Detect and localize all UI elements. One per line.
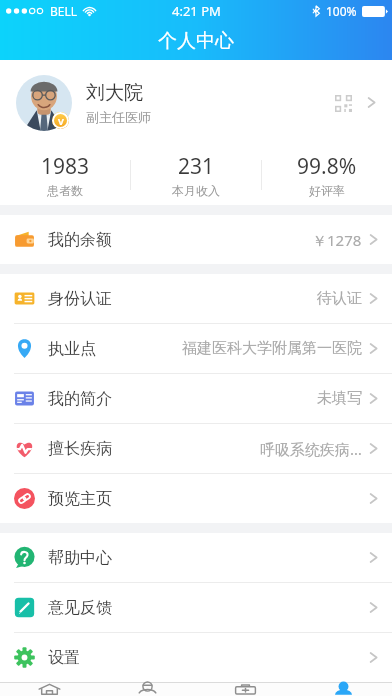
staticText: 我的简介 [48,389,112,409]
staticText: 副主任医师 [86,109,151,125]
button[interactable]: 执业点 [0,324,392,374]
button[interactable]: 预览主页 [0,474,392,523]
staticText: 个人中心 [158,29,234,53]
button[interactable]: 1983 [0,145,130,205]
button[interactable]: 患者 [98,683,196,696]
button[interactable]: 我的 [294,683,392,696]
staticText: 预览主页 [48,489,112,509]
staticText: ￥1278 [312,230,362,250]
button[interactable]: 99.8% [262,145,392,205]
staticText: 待认证 [317,289,362,308]
button[interactable]: 首页 [0,683,98,696]
staticText: 1983 [41,152,90,181]
staticText: 患者数 [47,183,83,198]
staticText: 231 [178,152,215,181]
staticText: 福建医科大学附属第一医院 [182,339,362,358]
button[interactable]: 二维码名片 [331,91,355,115]
button[interactable]: 我的余额 [0,215,392,264]
staticText: 意见反馈 [48,598,112,618]
staticText: 设置 [48,648,80,668]
button[interactable]: 医务 [196,683,294,696]
staticText: 99.8% [297,152,357,181]
button[interactable]: 身份认证 [0,274,392,324]
staticText: 执业点 [48,339,96,359]
staticText: 身份认证 [48,289,112,309]
button[interactable]: 擅长疾病 [0,424,392,474]
button[interactable]: 设置 [0,633,392,682]
staticText: BELL [50,3,78,19]
staticText: 擅长疾病 [48,439,112,459]
staticText: 好评率 [309,183,345,198]
staticText: 未填写 [317,389,362,408]
staticText: 呼吸系统疾病… [260,439,362,459]
button[interactable]: 231 [131,145,261,205]
staticText: 我的余额 [48,230,112,250]
staticText: 100% [326,3,357,19]
staticText: 刘大院 [86,81,143,105]
staticText: 本月收入 [172,183,220,198]
staticText: V [58,115,64,127]
staticText: 帮助中心 [48,548,112,568]
button[interactable]: V [0,60,392,145]
staticText: 4:21 PM [172,2,221,20]
button[interactable]: 帮助中心 [0,533,392,583]
button[interactable]: 意见反馈 [0,583,392,633]
button[interactable]: 我的简介 [0,374,392,424]
